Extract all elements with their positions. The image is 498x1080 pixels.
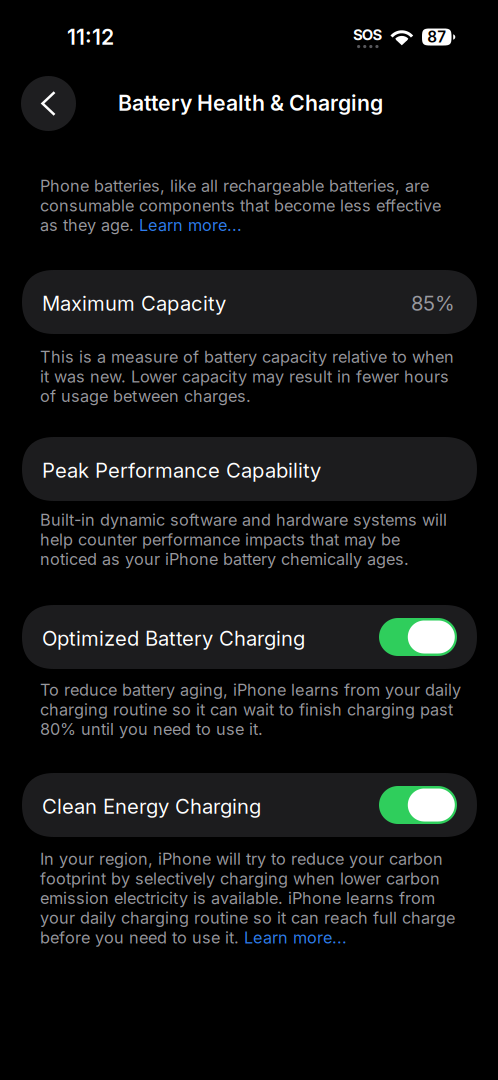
staticText: Optimized Battery Charging [42, 626, 305, 651]
staticText: 85% [411, 291, 455, 316]
staticText: In your region, iPhone will try to reduc… [40, 849, 455, 947]
staticText: 87 [427, 28, 446, 46]
staticText: This is a measure of battery capacity re… [40, 347, 454, 406]
staticText: Built-in dynamic software and hardware s… [40, 510, 447, 569]
button[interactable]: Maximum Capacity [22, 270, 477, 334]
staticText: Maximum Capacity [42, 291, 226, 316]
button[interactable]: Optimized Battery Charging [22, 605, 477, 669]
staticText: 11:12 [67, 24, 114, 50]
button[interactable]: Back [21, 76, 76, 131]
button[interactable]: Peak Performance Capability [22, 437, 477, 501]
staticText: Phone batteries, like all rechargeable b… [40, 176, 441, 235]
staticText: SOS [353, 26, 383, 44]
staticText: To reduce battery aging, iPhone learns f… [40, 680, 461, 739]
staticText: Clean Energy Charging [42, 794, 261, 819]
staticText: Battery Health & Charging [118, 90, 383, 116]
button[interactable]: Clean Energy Charging [22, 773, 477, 837]
staticText: Peak Performance Capability [42, 458, 321, 483]
